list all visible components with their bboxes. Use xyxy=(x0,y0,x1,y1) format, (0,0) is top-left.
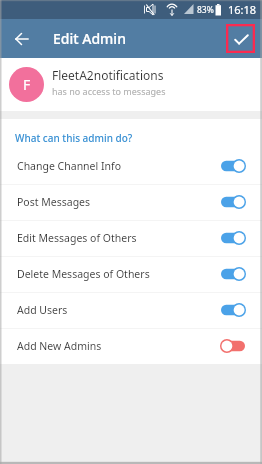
button[interactable]: Post Messages xyxy=(0,185,262,220)
staticText: has no access to messages xyxy=(52,85,166,97)
button[interactable]: Change Channel Info xyxy=(0,149,262,184)
button[interactable]: F xyxy=(0,58,262,111)
staticText: F xyxy=(23,75,31,94)
button[interactable]: Edit Messages of Others xyxy=(0,221,262,256)
staticText: Change Channel Info xyxy=(17,159,221,173)
button[interactable]: Back xyxy=(9,26,35,52)
staticText: Edit Admin xyxy=(53,29,126,48)
staticText: Post Messages xyxy=(17,195,221,209)
staticText: FleetA2notifications xyxy=(52,67,164,83)
staticText: What can this admin do? xyxy=(15,131,133,145)
button[interactable]: Add Users xyxy=(0,293,262,328)
staticText: 83% xyxy=(197,4,214,16)
staticText: Add Users xyxy=(17,303,221,317)
staticText: Add New Admins xyxy=(17,339,221,353)
staticText: Edit Messages of Others xyxy=(17,231,221,245)
staticText: Delete Messages of Others xyxy=(17,267,221,281)
button[interactable]: Add New Admins xyxy=(0,329,262,364)
button[interactable]: Done xyxy=(226,24,255,53)
button[interactable]: Delete Messages of Others xyxy=(0,257,262,292)
staticText: 16:18 xyxy=(228,2,257,17)
